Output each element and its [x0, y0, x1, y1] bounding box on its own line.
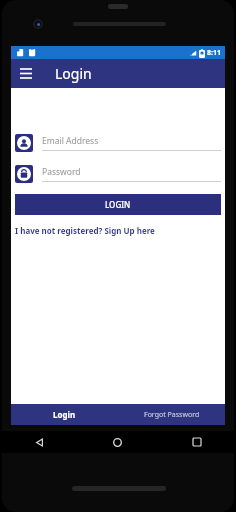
- button[interactable]: Open navigation menu: [11, 59, 41, 88]
- staticText: Password: [42, 166, 81, 178]
- button[interactable]: Home: [78, 431, 157, 453]
- staticText: Login: [53, 409, 76, 420]
- button[interactable]: Back: [0, 431, 78, 453]
- button[interactable]: Login: [11, 404, 118, 425]
- button[interactable]: Recent apps: [157, 431, 236, 453]
- staticText: Email Address: [42, 135, 99, 147]
- button[interactable]: I have not registered? Sign Up here: [15, 225, 155, 236]
- button[interactable]: Email Address: [42, 135, 221, 151]
- staticText: LOGIN: [105, 199, 131, 210]
- button[interactable]: Password: [42, 166, 221, 182]
- button[interactable]: LOGIN: [15, 194, 221, 215]
- staticText: I have not registered? Sign Up here: [15, 225, 155, 236]
- button[interactable]: Forgot Password: [118, 404, 225, 425]
- staticText: 8:11: [207, 48, 221, 58]
- staticText: Login: [55, 64, 92, 83]
- staticText: Forgot Password: [144, 410, 200, 420]
